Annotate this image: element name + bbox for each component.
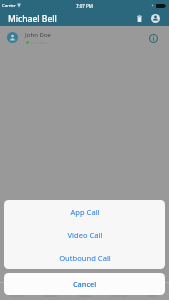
button[interactable]: Cancel <box>4 273 165 295</box>
button[interactable]: Contacts <box>33 283 67 300</box>
staticText: John Doe <box>25 31 51 39</box>
button[interactable]: Voicemail <box>101 283 135 300</box>
staticText: Just Now <box>31 40 48 45</box>
staticText: Video Call <box>67 230 103 240</box>
staticText: More <box>148 293 157 298</box>
button[interactable]: App Call <box>4 200 165 223</box>
button[interactable]: Recents <box>0 283 33 300</box>
button[interactable]: Delete <box>132 11 147 26</box>
staticText: Keypad <box>78 293 91 298</box>
button[interactable]: Video Call <box>4 223 165 246</box>
button[interactable]: Account <box>148 11 163 26</box>
staticText: Outbound Call <box>59 253 111 263</box>
staticText: Recents <box>10 293 24 298</box>
staticText: App Call <box>70 207 100 217</box>
staticText: Cancel <box>73 279 97 289</box>
button[interactable]: Info <box>146 32 161 45</box>
button[interactable]: Outbound Call <box>4 246 165 269</box>
staticText: 7:07 PM <box>76 3 93 9</box>
button[interactable]: More <box>135 283 169 300</box>
staticText: Carrier <box>2 3 16 9</box>
button[interactable]: John Doe <box>0 26 169 48</box>
staticText: Voicemail <box>110 293 127 298</box>
staticText: Contacts <box>43 293 58 298</box>
button[interactable]: Keypad <box>67 283 101 300</box>
staticText: Michael Bell <box>8 13 57 25</box>
